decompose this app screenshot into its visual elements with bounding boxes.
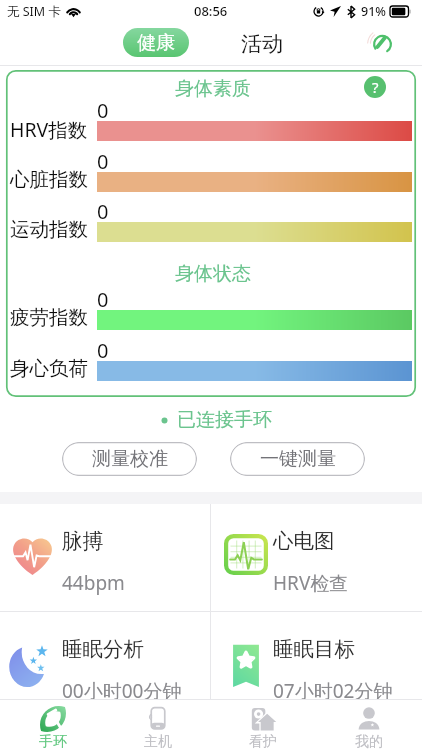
staticText: 心脏指数 <box>10 167 88 192</box>
staticText: 运动指数 <box>10 217 88 242</box>
staticText: 疲劳指数 <box>10 305 88 330</box>
button[interactable]: 一键测量 <box>230 442 365 476</box>
button[interactable]: 测量校准 <box>62 442 197 476</box>
staticText: 0 <box>97 198 109 225</box>
button[interactable]: 活动 <box>241 31 283 57</box>
staticText: 活动 <box>241 31 283 57</box>
staticText: 0 <box>97 148 109 175</box>
staticText: 00小时00分钟 <box>62 678 182 704</box>
staticText: 0 <box>97 97 109 124</box>
staticText: 身体素质 <box>175 77 251 101</box>
button[interactable]: 主机 <box>105 699 210 750</box>
staticText: 脉搏 <box>62 528 103 554</box>
button[interactable]: 脉搏 <box>0 504 211 611</box>
button[interactable]: 健康 <box>123 28 189 57</box>
button[interactable]: Help <box>364 76 386 98</box>
staticText: 已连接手环 <box>177 408 272 432</box>
button[interactable]: 心电图 <box>211 504 422 611</box>
staticText: 0 <box>97 337 109 364</box>
staticText: 测量校准 <box>92 447 168 471</box>
staticText: HRV指数 <box>10 116 88 143</box>
staticText: 睡眠目标 <box>273 636 355 662</box>
button[interactable]: 看护 <box>210 699 316 750</box>
staticText: 睡眠分析 <box>62 636 144 662</box>
staticText: 身心负荷 <box>10 356 88 381</box>
staticText: 0 <box>97 286 109 313</box>
staticText: 我的 <box>355 733 383 750</box>
staticText: 主机 <box>144 733 172 750</box>
staticText: 无 SIM 卡 <box>7 3 61 20</box>
button[interactable]: 睡眠分析 <box>0 612 211 719</box>
button[interactable]: Refresh <box>369 31 396 58</box>
staticText: 心电图 <box>273 528 335 554</box>
button[interactable]: 我的 <box>316 699 422 750</box>
staticText: 看护 <box>249 733 277 750</box>
staticText: 44bpm <box>62 570 125 596</box>
staticText: 一键测量 <box>260 447 336 471</box>
staticText: 07小时02分钟 <box>273 678 393 704</box>
staticText: 身体状态 <box>175 262 251 286</box>
staticText: 健康 <box>137 31 175 55</box>
staticText: ? <box>372 77 379 97</box>
staticText: 08:56 <box>194 2 228 20</box>
staticText: 91% <box>361 3 386 20</box>
staticText: 手环 <box>39 733 67 750</box>
button[interactable]: 手环 <box>0 699 105 750</box>
staticText: HRV检查 <box>273 570 349 596</box>
button[interactable]: 睡眠目标 <box>211 612 422 719</box>
